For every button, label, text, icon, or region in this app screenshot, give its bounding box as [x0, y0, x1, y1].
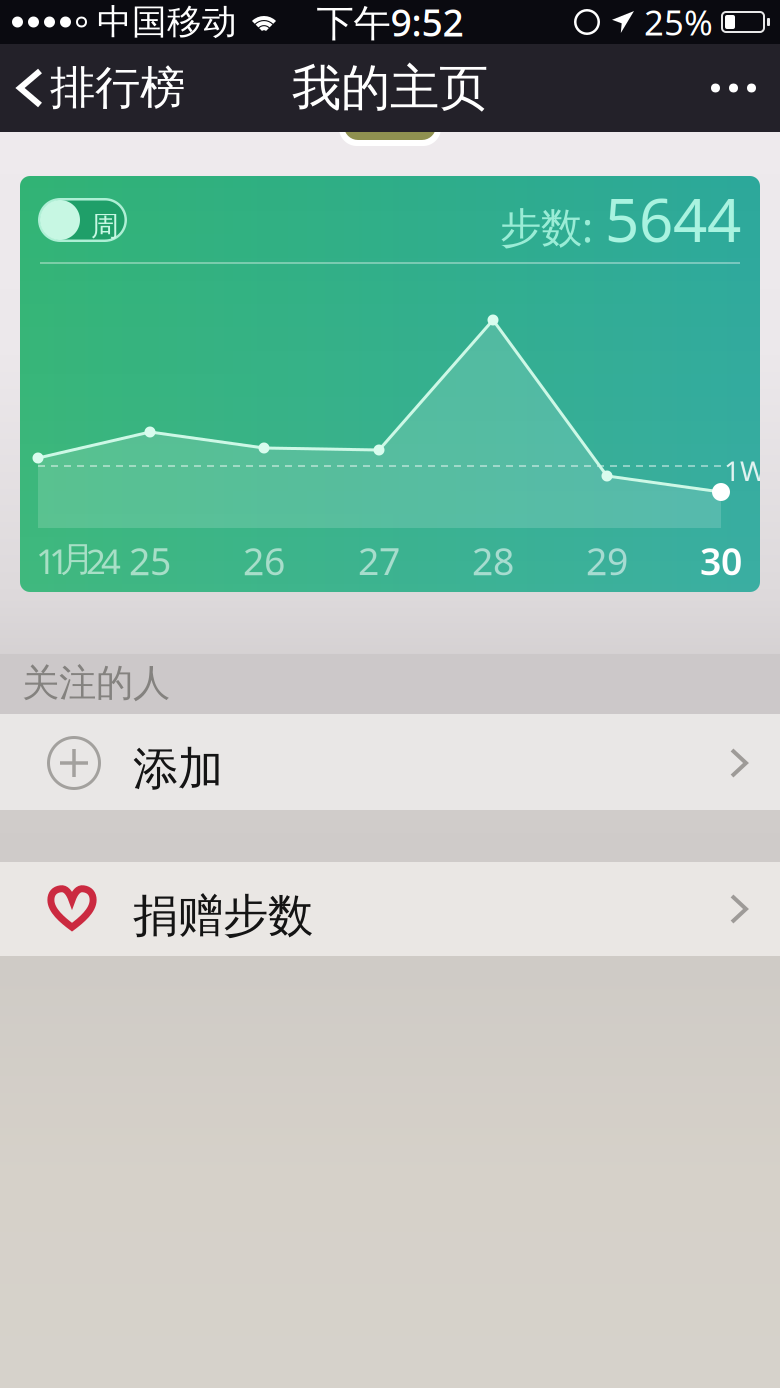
staticText: 步数: — [500, 199, 593, 254]
staticText: 1W — [724, 452, 766, 489]
staticText: 25 — [129, 536, 171, 586]
staticText: 5644 — [605, 179, 741, 259]
staticText: 1 — [36, 538, 56, 584]
staticText: 周 — [91, 209, 119, 243]
staticText: 26 — [243, 536, 285, 586]
staticText: 27 — [358, 536, 400, 586]
staticText: 下午9:52 — [316, 0, 463, 47]
button[interactable]: 更多 — [711, 83, 780, 92]
staticText: 29 — [586, 536, 628, 586]
staticText: 28 — [472, 536, 514, 586]
staticText: 我的主页 — [292, 58, 488, 118]
staticText: 30 — [700, 536, 742, 586]
button[interactable]: 捐赠步数 — [0, 862, 780, 956]
staticText: 捐赠步数 — [133, 888, 313, 944]
button[interactable]: 返回排行榜 — [0, 60, 185, 116]
staticText: 25% — [644, 0, 713, 45]
button[interactable]: 按周查看 — [38, 198, 127, 242]
button[interactable]: 添加 — [0, 714, 780, 810]
staticText: 排行榜 — [50, 60, 185, 116]
staticText: 2 — [86, 538, 106, 584]
staticText: 1 — [49, 538, 69, 584]
staticText: 月 — [60, 538, 95, 581]
staticText: 添加 — [133, 741, 223, 797]
staticText: 关注的人 — [22, 660, 170, 706]
staticText: 4 — [101, 538, 121, 584]
staticText: 中国移动 — [97, 1, 237, 43]
